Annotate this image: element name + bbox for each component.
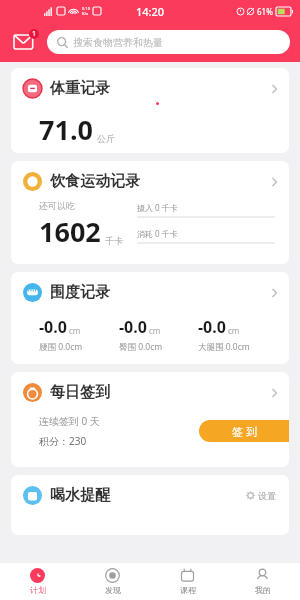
button[interactable]: 设置: [243, 487, 279, 504]
staticText: 0.10 K/s: [82, 6, 90, 16]
staticText: 臀围 0.0cm: [119, 341, 163, 353]
staticText: cm: [149, 325, 161, 336]
staticText: 千卡: [105, 235, 123, 246]
staticText: 我的: [255, 585, 271, 595]
staticText: 71.0: [39, 111, 93, 148]
staticText: 每日签到: [50, 383, 110, 402]
staticText: 设置: [258, 490, 276, 501]
staticText: 1: [32, 29, 37, 39]
staticText: 1602: [39, 213, 101, 250]
staticText: 连续签到 0 天: [39, 414, 100, 428]
staticText: 消耗 0 千卡: [137, 228, 178, 239]
staticText: 计划: [30, 585, 46, 595]
button[interactable]: 每日签到: [11, 372, 289, 467]
staticText: 喝水提醒: [50, 486, 110, 505]
button[interactable]: 体重记录: [11, 68, 289, 153]
button[interactable]: 发现: [75, 563, 150, 600]
staticText: -0.0: [119, 316, 147, 338]
button[interactable]: 围度记录: [11, 272, 289, 364]
staticText: 课程: [180, 585, 196, 595]
staticText: 大腿围 0.0cm: [198, 341, 250, 353]
staticText: 签 到: [232, 424, 257, 439]
button[interactable]: Messages: [10, 27, 40, 57]
staticText: cm: [228, 325, 240, 336]
staticText: -0.0: [39, 316, 67, 338]
staticText: 公斤: [97, 133, 115, 144]
button[interactable]: 搜索食物营养和热量: [47, 30, 290, 54]
staticText: -0.0: [198, 316, 226, 338]
staticText: 发现: [105, 585, 121, 595]
staticText: 还可以吃: [39, 200, 75, 211]
staticText: 围度记录: [50, 283, 110, 302]
staticText: 积分：230: [39, 434, 87, 448]
staticText: 14:20: [136, 4, 165, 19]
button[interactable]: 课程: [150, 563, 225, 600]
button[interactable]: 计划: [0, 563, 75, 600]
staticText: 体重记录: [50, 79, 110, 98]
button[interactable]: 喝水提醒: [11, 475, 289, 535]
button[interactable]: 我的: [225, 563, 300, 600]
staticText: 腰围 0.0cm: [39, 341, 83, 353]
button[interactable]: 饮食运动记录: [11, 161, 289, 264]
staticText: cm: [69, 325, 81, 336]
staticText: 搜索食物营养和热量: [73, 36, 163, 49]
button[interactable]: 签 到: [199, 420, 289, 442]
staticText: 饮食运动记录: [50, 172, 140, 191]
staticText: 摄入 0 千卡: [137, 202, 178, 213]
staticText: 61%: [257, 6, 273, 17]
